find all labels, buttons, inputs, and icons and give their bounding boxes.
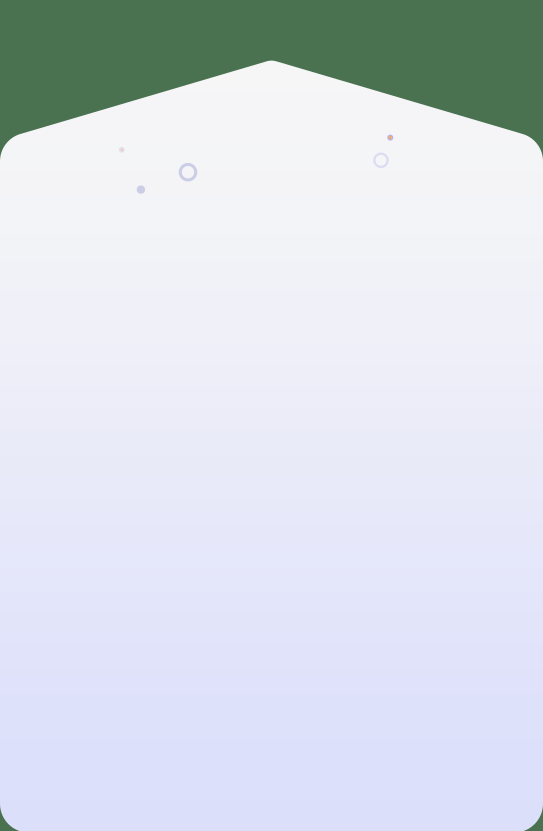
button[interactable]: Open envelope — [0, 0, 543, 831]
